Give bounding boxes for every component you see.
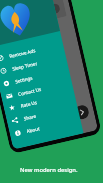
staticText: Contact Us [17, 86, 42, 97]
button[interactable]: Sleep Timer [0, 50, 67, 78]
staticText: Rate Us [20, 99, 38, 109]
staticText: New modern design. [20, 166, 78, 174]
button[interactable]: Settings [0, 62, 70, 91]
button[interactable]: Remove Ads [0, 37, 64, 66]
staticText: Settings [14, 74, 33, 84]
button[interactable]: Rate Us [3, 87, 76, 115]
staticText: Share [23, 113, 37, 121]
button[interactable]: Share [6, 99, 79, 128]
staticText: Sleep Timer [12, 60, 38, 72]
button[interactable]: Contact Us [0, 75, 73, 104]
staticText: Remove Ads [9, 47, 36, 59]
button[interactable]: Play [73, 104, 90, 121]
staticText: About [26, 125, 41, 134]
button[interactable]: About [8, 112, 82, 141]
